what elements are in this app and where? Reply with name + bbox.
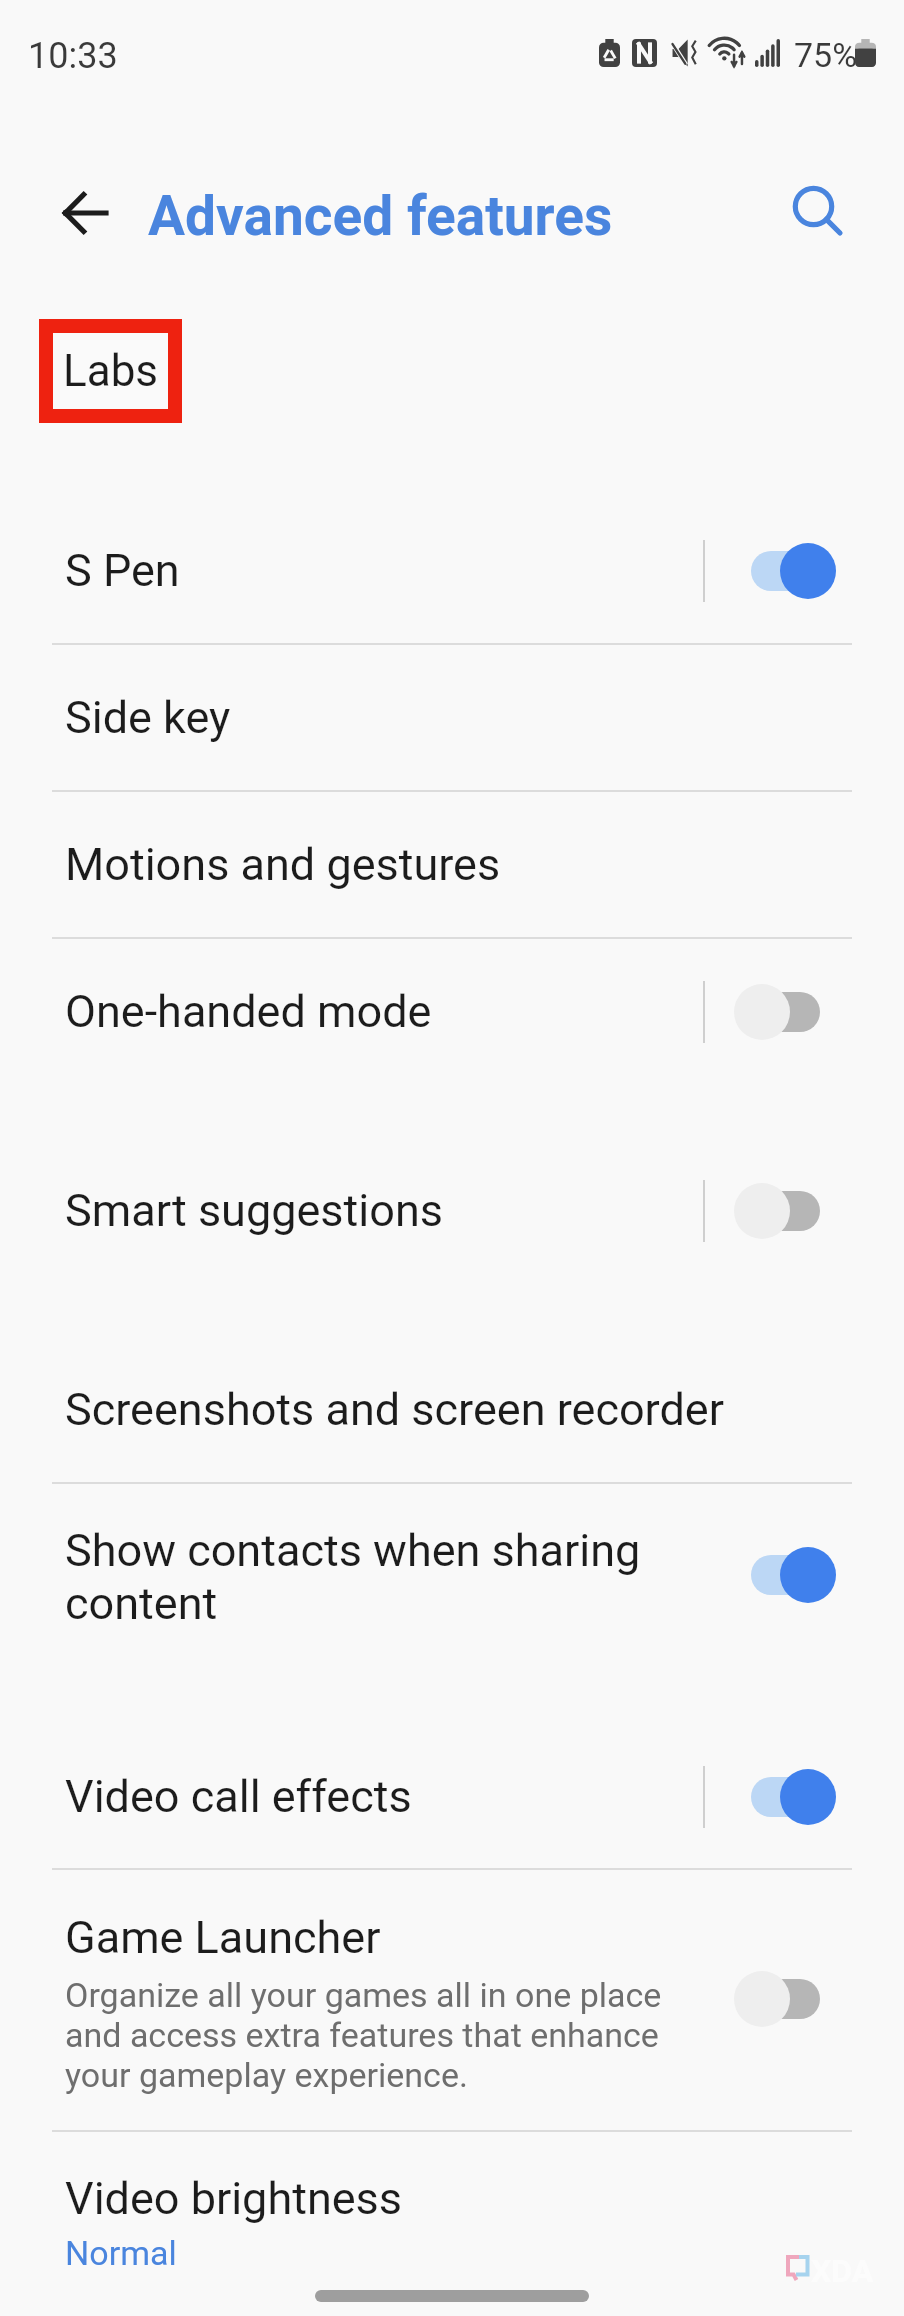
button[interactable]: Back — [45, 174, 123, 252]
staticText: 10:33 — [28, 34, 118, 76]
staticText: Organize all your games all in one place… — [65, 1975, 662, 2095]
button[interactable] — [0, 1880, 904, 2128]
staticText: Video call effects — [65, 1770, 412, 1823]
staticText: Game Launcher — [65, 1911, 381, 1964]
button[interactable] — [0, 2145, 904, 2305]
staticText: Advanced features — [148, 184, 613, 249]
staticText: Motions and gestures — [65, 838, 501, 891]
staticText: Normal — [65, 2233, 177, 2273]
button[interactable] — [0, 1724, 904, 1871]
staticText: Video brightness — [65, 2172, 403, 2225]
staticText: Side key — [65, 691, 231, 744]
staticText: S Pen — [65, 544, 180, 597]
button[interactable] — [0, 939, 904, 1086]
staticText: Smart suggestions — [65, 1184, 443, 1237]
staticText: 75% — [794, 35, 858, 75]
button[interactable]: Search — [784, 175, 856, 247]
staticText: One-handed mode — [65, 985, 432, 1038]
button[interactable] — [0, 498, 904, 645]
staticText: Show contacts when sharing content — [65, 1524, 641, 1630]
button[interactable] — [0, 792, 904, 939]
button[interactable] — [0, 1337, 904, 1484]
staticText: Screenshots and screen recorder — [65, 1383, 724, 1436]
button[interactable] — [0, 1496, 904, 1676]
button[interactable] — [0, 645, 904, 792]
button[interactable] — [0, 1138, 904, 1285]
staticText: Labs — [63, 345, 159, 397]
